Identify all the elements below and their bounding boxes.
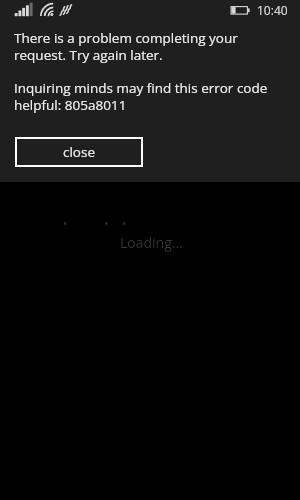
staticText: There is a problem completing your reque… [14, 29, 262, 64]
staticText: close [63, 143, 96, 161]
button[interactable]: close [15, 137, 143, 167]
staticText: Inquiring minds may find this error code… [14, 79, 272, 114]
other: Signal strength [0, 0, 300, 20]
staticText: Loading... [120, 233, 183, 252]
staticText: 10:40 [257, 2, 288, 18]
